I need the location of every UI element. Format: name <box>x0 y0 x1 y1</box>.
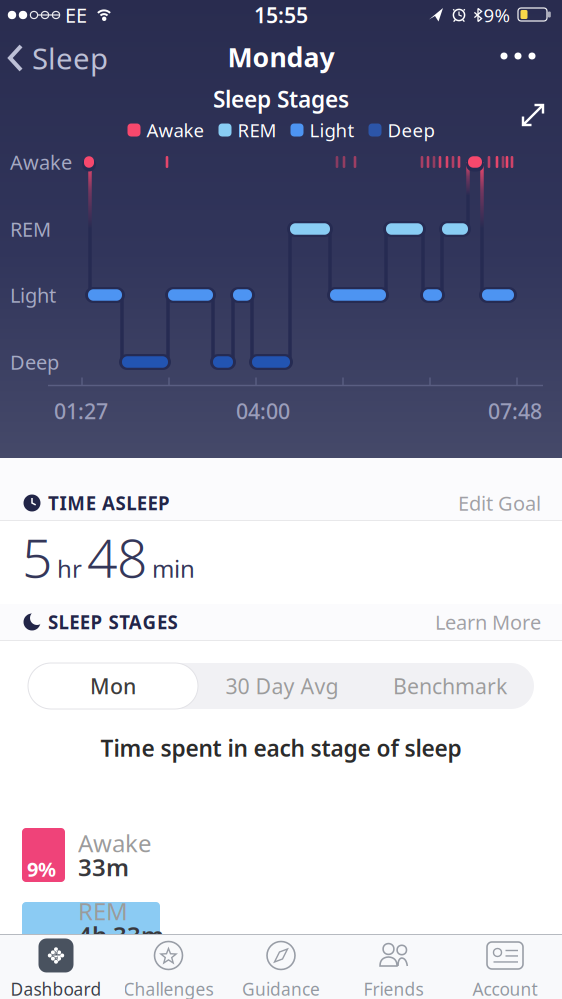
staticText: Deep <box>10 349 59 375</box>
staticText: Light <box>309 118 354 142</box>
staticText: 15:55 <box>254 1 308 29</box>
staticText: Sleep Stages <box>213 84 349 114</box>
staticText: Learn More <box>435 609 541 635</box>
button[interactable] <box>518 100 548 130</box>
button[interactable]: Dashboard <box>1 938 111 999</box>
staticText: Deep <box>387 118 434 142</box>
staticText: Awake <box>10 149 72 175</box>
button[interactable]: 30 Day Avg <box>198 663 366 709</box>
staticText: REM <box>78 895 128 927</box>
staticText: Monday <box>227 39 334 75</box>
button[interactable]: Guidance <box>226 938 336 999</box>
staticText: SLEEP STAGES <box>48 610 178 634</box>
button[interactable]: Learn More <box>421 609 541 635</box>
staticText: Dashboard <box>10 977 101 999</box>
button[interactable] <box>490 39 546 73</box>
staticText: 07:48 <box>488 397 542 425</box>
staticText: 5 <box>22 522 52 592</box>
staticText: Account <box>472 977 537 999</box>
staticText: Friends <box>363 977 423 999</box>
staticText: 9% <box>27 856 56 882</box>
staticText: 30 Day Avg <box>225 672 338 700</box>
staticText: Benchmark <box>393 672 507 700</box>
staticText: 33m <box>78 851 129 883</box>
staticText: 24% <box>28 930 68 956</box>
staticText: Awake <box>146 118 204 142</box>
button[interactable]: Sleep <box>8 38 108 77</box>
staticText: Sleep <box>32 38 108 77</box>
button[interactable]: Challenges <box>113 938 223 999</box>
staticText: Mon <box>90 672 136 700</box>
staticText: EE <box>65 2 87 28</box>
staticText: 48 <box>87 522 147 592</box>
staticText: 01:27 <box>54 397 108 425</box>
staticText: 4h 33m <box>78 919 164 951</box>
staticText: Light <box>10 282 56 308</box>
staticText: Edit Goal <box>458 490 541 516</box>
button[interactable]: Friends <box>338 938 448 999</box>
staticText: Guidance <box>242 977 320 999</box>
staticText: 04:00 <box>236 397 290 425</box>
staticText: hr <box>57 552 82 584</box>
button[interactable]: Account <box>450 938 560 999</box>
button[interactable]: Edit Goal <box>421 490 541 516</box>
staticText: 9% <box>483 3 510 27</box>
staticText: REM <box>237 118 276 142</box>
staticText: Time spent in each stage of sleep <box>100 733 461 763</box>
staticText: min <box>152 552 195 584</box>
button[interactable]: Mon <box>28 663 198 709</box>
button[interactable]: Benchmark <box>366 663 534 709</box>
staticText: REM <box>10 216 51 242</box>
staticText: TIME ASLEEP <box>48 491 170 515</box>
staticText: Awake <box>78 827 152 859</box>
staticText: Challenges <box>123 977 213 999</box>
